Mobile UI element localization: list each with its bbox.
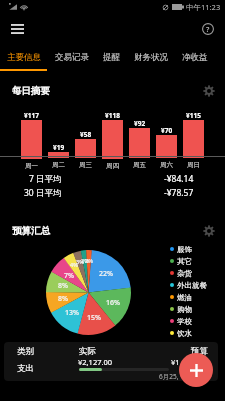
staticText: 实际 — [79, 346, 96, 357]
staticText: 预算汇总 — [12, 225, 50, 237]
staticText: 周六 — [160, 161, 173, 169]
button[interactable]: 类别 — [4, 342, 218, 381]
staticText: 饮水 — [177, 329, 192, 338]
button[interactable]: 财务状况 — [127, 44, 175, 70]
staticText: 学校 — [177, 317, 192, 326]
staticText: 每日摘要 — [12, 85, 50, 97]
staticText: 支出 — [17, 363, 34, 374]
button[interactable]: 其它 — [170, 255, 192, 267]
staticText: 4% — [65, 261, 83, 268]
staticText: 2% — [76, 257, 94, 264]
staticText: 周一 — [25, 162, 38, 170]
button[interactable]: 学校 — [170, 315, 192, 327]
staticText: 提醒 — [103, 52, 120, 63]
staticText: 外出就餐 — [177, 281, 207, 290]
staticText: ¥115 — [186, 111, 201, 120]
button[interactable]: Help — [196, 17, 220, 41]
button[interactable]: 杂货 — [170, 267, 192, 279]
staticText: 13% — [60, 308, 84, 318]
staticText: ¥92 — [134, 119, 146, 128]
button[interactable]: 交易记录 — [48, 44, 96, 70]
button[interactable]: 主要信息 — [0, 44, 48, 70]
staticText: ? — [206, 24, 210, 34]
staticText: 7 日平均 — [29, 173, 62, 183]
staticText: 15% — [82, 313, 106, 323]
button[interactable]: 净收益 — [175, 44, 215, 70]
staticText: 6月25, — [159, 372, 179, 381]
button[interactable]: 外出就餐 — [170, 279, 207, 291]
staticText: ¥19 — [53, 143, 65, 152]
staticText: ¥1 — [171, 357, 180, 367]
staticText: 购物 — [177, 305, 192, 314]
staticText: 周二 — [52, 161, 65, 169]
staticText: -¥84.14 — [164, 173, 194, 183]
staticText: ¥2,127.00 — [78, 357, 113, 367]
staticText: 3% — [71, 258, 89, 265]
staticText: 周三 — [79, 161, 92, 169]
staticText: -¥78.57 — [164, 187, 194, 197]
staticText: ¥118 — [105, 111, 120, 120]
staticText: 其它 — [177, 257, 192, 266]
staticText: 16% — [101, 298, 125, 308]
staticText: 预算 — [191, 346, 208, 357]
staticText: 交易记录 — [55, 52, 89, 63]
staticText: ¥70 — [161, 126, 173, 135]
button[interactable]: Settings — [200, 82, 218, 100]
staticText: 燃油 — [177, 293, 192, 302]
button[interactable]: 提醒 — [96, 44, 127, 70]
staticText: 周日 — [187, 161, 200, 169]
staticText: 22% — [94, 269, 118, 279]
staticText: 2% — [80, 257, 98, 264]
staticText: 中午11:23 — [186, 2, 221, 12]
staticText: ¥117 — [24, 111, 39, 120]
staticText: 服饰 — [177, 245, 192, 254]
button[interactable]: Add — [179, 353, 213, 387]
button[interactable]: Menu — [5, 17, 29, 41]
button[interactable]: Settings — [200, 222, 218, 240]
staticText: ¥58 — [80, 130, 92, 139]
button[interactable]: 燃油 — [170, 291, 192, 303]
staticText: 财务状况 — [134, 52, 168, 63]
staticText: 主要信息 — [7, 52, 41, 63]
staticText: 周五 — [133, 161, 146, 169]
button[interactable]: 服饰 — [170, 243, 192, 255]
staticText: 8% — [51, 281, 75, 291]
staticText: 30 日平均 — [24, 187, 62, 197]
staticText: 净收益 — [182, 52, 208, 63]
button[interactable]: 购物 — [170, 303, 192, 315]
staticText: 周四 — [106, 162, 119, 170]
button[interactable]: 饮水 — [170, 327, 192, 339]
staticText: 杂货 — [177, 269, 192, 278]
staticText: 类别 — [17, 346, 34, 357]
staticText: 8% — [51, 294, 75, 304]
staticText: 7% — [57, 271, 81, 281]
